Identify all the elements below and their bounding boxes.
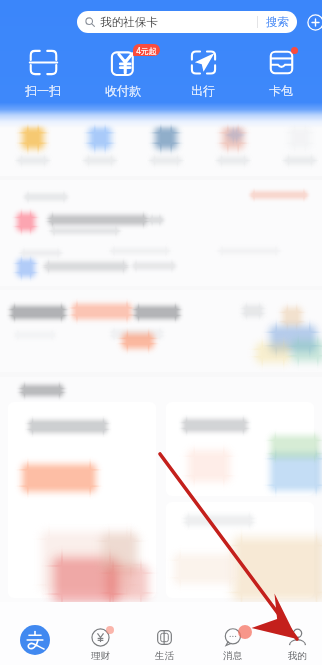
staticText: 生活 xyxy=(155,650,174,662)
button[interactable]: 消息 xyxy=(202,606,262,662)
staticText: 我的社保卡 xyxy=(100,15,158,29)
staticText: 4元起 xyxy=(136,45,157,56)
staticText: 消息 xyxy=(223,650,242,662)
staticText: 扫一扫 xyxy=(25,83,61,98)
staticText: 理财 xyxy=(91,650,110,662)
button[interactable]: 扫一扫 xyxy=(3,48,83,98)
button[interactable]: 出行 xyxy=(163,48,243,98)
button[interactable]: 生活 xyxy=(134,606,194,662)
staticText: 卡包 xyxy=(269,83,293,98)
staticText: 收付款 xyxy=(105,83,141,98)
button[interactable]: Add xyxy=(303,10,322,34)
button[interactable]: 我的 xyxy=(267,606,322,662)
button[interactable]: 搜索 xyxy=(258,11,297,33)
staticText: 我的 xyxy=(288,650,307,662)
button[interactable]: 卡包 xyxy=(243,48,319,98)
button[interactable]: 4元起 xyxy=(83,48,163,98)
button[interactable]: 理财 xyxy=(70,606,130,662)
button[interactable]: 我的社保卡 xyxy=(77,11,297,33)
staticText: 出行 xyxy=(191,83,215,98)
staticText: 搜索 xyxy=(266,15,289,29)
button[interactable]: 支付宝 首页 xyxy=(5,606,65,662)
